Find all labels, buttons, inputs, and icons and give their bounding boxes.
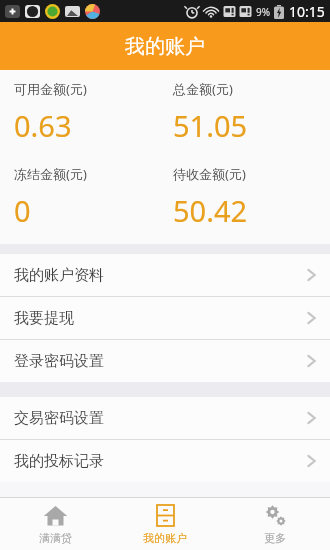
staticText: 我的账户 xyxy=(125,34,205,59)
staticText: 0.63 xyxy=(14,106,72,145)
button[interactable]: 满满贷 xyxy=(0,498,110,550)
staticText: 待收金额(元) xyxy=(173,165,246,183)
staticText: 满满贷 xyxy=(39,531,72,545)
button[interactable]: 我的投标记录 xyxy=(0,440,330,482)
staticText: 0 xyxy=(14,191,31,230)
staticText: 50.42 xyxy=(173,191,248,230)
staticText: 登录密码设置 xyxy=(14,352,104,371)
staticText: 我要提现 xyxy=(14,309,74,328)
staticText: 10:15 xyxy=(289,2,325,21)
button[interactable]: 交易密码设置 xyxy=(0,397,330,439)
staticText: 冻结金额(元) xyxy=(14,165,87,183)
staticText: 51.05 xyxy=(173,106,248,145)
button[interactable]: 登录密码设置 xyxy=(0,340,330,382)
button[interactable]: 我的账户 xyxy=(110,498,220,550)
staticText: 我的账户 xyxy=(143,531,187,545)
staticText: 交易密码设置 xyxy=(14,409,104,428)
staticText: 总金额(元) xyxy=(173,80,233,98)
button[interactable]: 我要提现 xyxy=(0,297,330,339)
button[interactable]: 我的账户资料 xyxy=(0,254,330,296)
staticText: 我的投标记录 xyxy=(14,452,104,471)
staticText: 9% xyxy=(256,5,271,19)
staticText: 更多 xyxy=(264,531,286,545)
staticText: 可用金额(元) xyxy=(14,80,87,98)
staticText: 我的账户资料 xyxy=(14,266,104,285)
button[interactable]: 更多 xyxy=(220,498,330,550)
